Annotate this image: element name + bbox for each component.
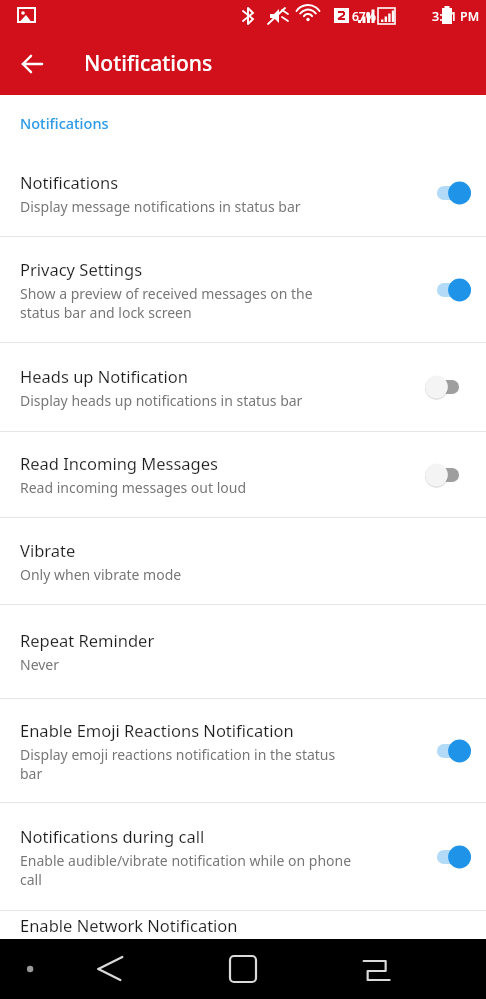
staticText: Notifications [20, 113, 109, 133]
button[interactable]: Privacy Settings [0, 237, 486, 342]
button[interactable]: Repeat Reminder [0, 605, 486, 698]
button[interactable]: Back [8, 40, 56, 88]
staticText: Display emoji reactions notification in … [20, 745, 336, 783]
staticText: Enable Network Notification [20, 914, 238, 936]
button[interactable]: Vibrate [0, 518, 486, 604]
button[interactable]: Enable Emoji Reactions Notification [0, 699, 486, 802]
staticText: Notifications during call [20, 825, 205, 847]
staticText: Only when vibrate mode [20, 565, 182, 584]
staticText: Notifications [20, 171, 119, 193]
staticText: Never [20, 655, 60, 674]
staticText: Privacy Settings [20, 258, 143, 280]
button[interactable]: Notifications during call [0, 803, 486, 910]
button[interactable]: Toggle on [425, 844, 471, 870]
button[interactable]: Notifications [0, 150, 486, 236]
staticText: Notifications [84, 49, 213, 78]
staticText: 67% [352, 8, 376, 24]
button[interactable]: Toggle off [425, 374, 471, 400]
button[interactable]: Toggle on [425, 180, 471, 206]
staticText: Vibrate [20, 539, 76, 561]
staticText: Read Incoming Messages [20, 452, 218, 474]
staticText: Enable Emoji Reactions Notification [20, 719, 294, 741]
staticText: 3:51 PM [432, 8, 480, 25]
staticText: Enable audible/vibrate notification whil… [20, 851, 352, 889]
button[interactable]: Toggle on [425, 277, 471, 303]
staticText: Display heads up notifications in status… [20, 391, 303, 410]
button[interactable]: Enable Network Notification [0, 911, 486, 939]
staticText: Display message notifications in status … [20, 197, 301, 216]
staticText: Read incoming messages out loud [20, 478, 247, 497]
button[interactable]: Toggle off [425, 462, 471, 488]
staticText: Heads up Notification [20, 365, 189, 387]
button[interactable]: Read Incoming Messages [0, 432, 486, 517]
staticText: Show a preview of received messages on t… [20, 284, 313, 322]
staticText: Repeat Reminder [20, 629, 155, 651]
button[interactable]: Toggle on [425, 738, 471, 764]
button[interactable]: Heads up Notification [0, 343, 486, 431]
